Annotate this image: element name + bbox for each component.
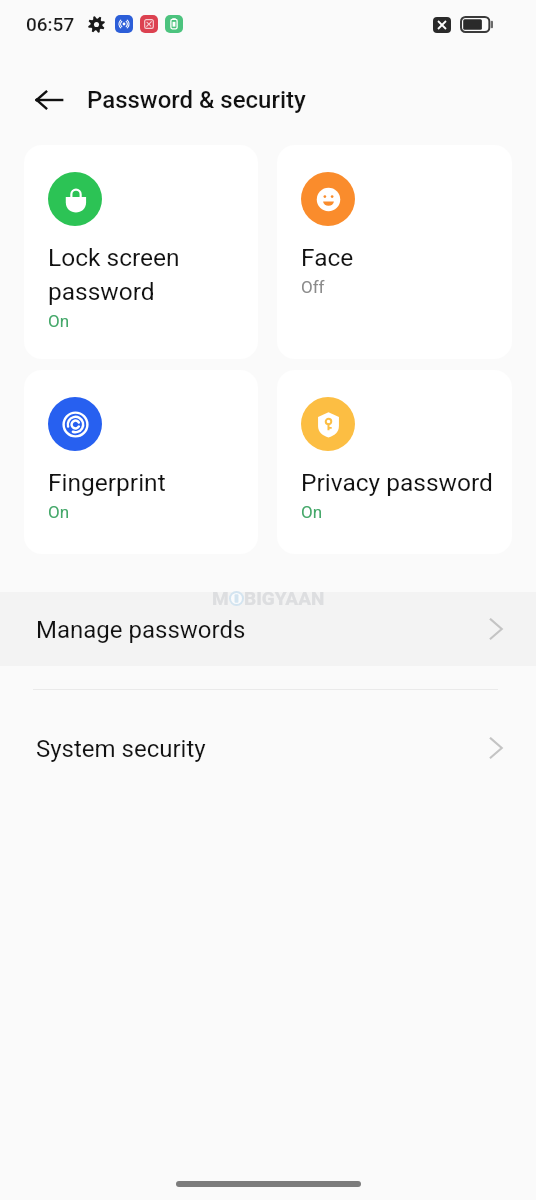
- staticText: Fingerprint: [48, 468, 166, 497]
- staticText: Password & security: [87, 86, 306, 114]
- staticText: Manage passwords: [36, 616, 246, 644]
- staticText: BIGYAAN: [244, 587, 325, 609]
- staticText: On: [48, 311, 70, 330]
- staticText: On: [301, 502, 323, 522]
- staticText: Face: [301, 243, 354, 272]
- button[interactable]: Lock screen password: [24, 145, 258, 359]
- staticText: M: [212, 587, 229, 609]
- staticText: Privacy password: [301, 468, 493, 497]
- staticText: Lock screen password: [48, 243, 180, 306]
- other: Open Manage passwords: [484, 617, 508, 641]
- staticText: Off: [301, 277, 325, 297]
- button[interactable]: Face: [277, 145, 512, 359]
- staticText: 06:57: [26, 13, 75, 35]
- button[interactable]: Manage passwords: [0, 592, 536, 666]
- button[interactable]: Fingerprint: [24, 370, 258, 554]
- button[interactable]: Privacy password: [277, 370, 512, 554]
- other: Open System security: [484, 736, 508, 760]
- button[interactable]: System security: [0, 690, 536, 806]
- staticText: System security: [36, 735, 206, 763]
- staticText: On: [48, 502, 70, 522]
- button[interactable]: Back: [27, 78, 71, 122]
